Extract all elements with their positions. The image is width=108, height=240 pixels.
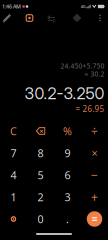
staticText: 4G (81, 4, 86, 9)
button[interactable]: Unit converter (43, 10, 59, 26)
button[interactable]: Clear (0, 120, 27, 142)
button[interactable]: 8 (27, 142, 54, 164)
button[interactable]: Percent (54, 120, 81, 142)
staticText: 2 (37, 190, 43, 204)
staticText: = 30.2 (84, 70, 104, 78)
button[interactable]: 0 (27, 208, 54, 230)
button[interactable]: Equals (81, 208, 108, 230)
staticText: ÷ (91, 123, 98, 139)
button[interactable]: 6 (54, 164, 81, 186)
button[interactable]: Calculator (21, 10, 37, 26)
staticText: 6 (64, 168, 70, 182)
staticText: 7 (10, 146, 16, 160)
button[interactable]: Scientific (0, 10, 15, 26)
staticText: % (63, 124, 72, 138)
button[interactable]: Backspace (27, 120, 54, 142)
staticText: 24.450+5.750 (60, 62, 104, 70)
staticText: + (91, 189, 98, 205)
button[interactable]: Currency converter (69, 10, 85, 26)
button[interactable]: Multiply (81, 142, 108, 164)
button[interactable]: 3 (54, 186, 81, 208)
staticText: 9 (64, 146, 70, 160)
staticText: 4 (10, 168, 16, 182)
button[interactable]: Minus (81, 164, 108, 186)
staticText: 5 (37, 168, 43, 182)
button[interactable]: 1 (0, 186, 27, 208)
button[interactable]: Decimal point (54, 208, 81, 230)
button[interactable]: Scientific functions (0, 208, 27, 230)
staticText: 0 (37, 212, 43, 226)
button[interactable]: More options (92, 10, 108, 26)
staticText: 8 (37, 146, 43, 160)
staticText: 30.2-3.250 (24, 84, 104, 103)
button[interactable]: 9 (54, 142, 81, 164)
button[interactable]: Divide (81, 120, 108, 142)
staticText: . (66, 212, 69, 226)
staticText: × (91, 146, 97, 160)
staticText: 1 (10, 190, 16, 204)
button[interactable]: 7 (0, 142, 27, 164)
button[interactable]: 4 (0, 164, 27, 186)
staticText: = 26.95 (75, 104, 104, 114)
staticText: 1:46 AM (2, 3, 21, 10)
staticText: − (91, 167, 98, 183)
button[interactable]: 2 (27, 186, 54, 208)
button[interactable]: 5 (27, 164, 54, 186)
button[interactable]: Plus (81, 186, 108, 208)
staticText: 3 (64, 190, 70, 204)
staticText: C (10, 124, 17, 138)
